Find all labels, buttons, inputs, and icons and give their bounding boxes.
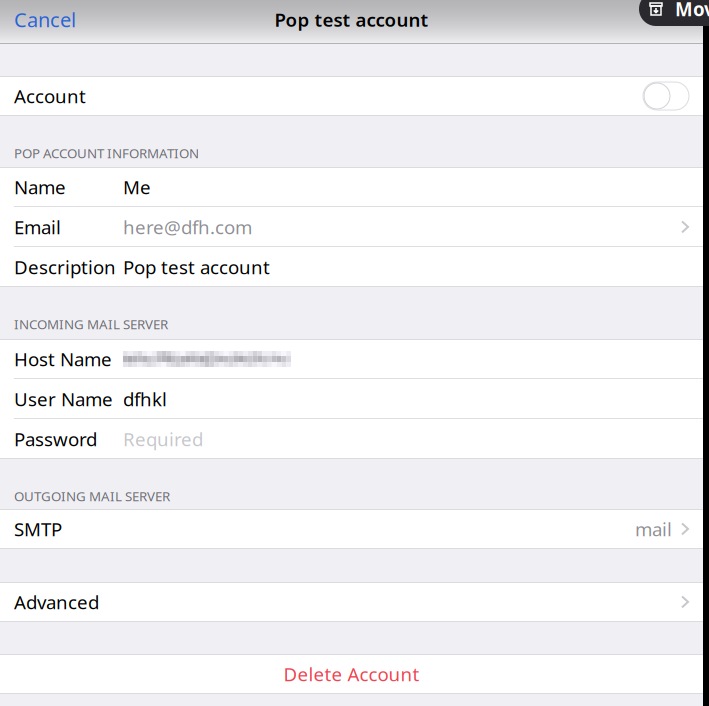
button[interactable]: Password [0,419,703,459]
staticText: OUTGOING MAIL SERVER [14,487,170,505]
staticText: Pop test account [123,255,270,279]
staticText: Password [14,427,97,451]
staticText: Description [14,255,116,279]
staticText: INCOMING MAIL SERVER [14,315,168,333]
staticText: Required [123,427,203,451]
staticText: Move [675,0,709,21]
staticText: Email [14,215,61,239]
button[interactable]: User Name [0,379,703,419]
staticText: Name [14,175,66,199]
button[interactable]: Advanced [0,582,703,622]
button[interactable]: Delete Account [0,654,703,694]
button[interactable]: Name [0,167,703,207]
staticText: POP ACCOUNT INFORMATION [14,144,199,162]
staticText: Pop test account [274,7,428,32]
button[interactable]: Move [639,0,709,26]
staticText: Me [123,175,151,199]
staticText: User Name [14,387,113,411]
button[interactable]: Email [0,207,703,247]
staticText: mail [635,517,672,541]
button[interactable]: Account [0,76,703,116]
button[interactable]: Cancel [0,0,76,39]
staticText: here@dfh.com [123,215,252,239]
staticText: Advanced [14,590,99,614]
staticText: dfhkl [123,387,167,411]
staticText: Account [14,84,86,108]
staticText: SMTP [14,517,62,541]
button[interactable]: Description [0,247,703,287]
button[interactable]: SMTP [0,509,703,549]
staticText: Host Name [14,347,112,371]
staticText: Cancel [14,6,76,33]
button[interactable]: Host Name [0,339,703,379]
staticText: Delete Account [283,662,419,686]
